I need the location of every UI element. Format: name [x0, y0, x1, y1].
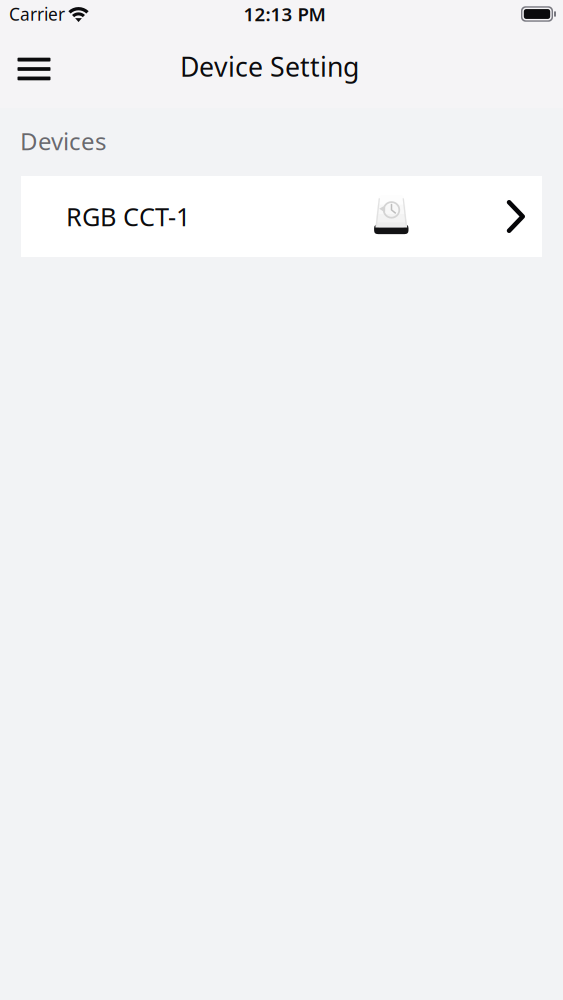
button[interactable]: RGB CCT-1: [21, 176, 542, 257]
staticText: 12:13 PM: [243, 2, 325, 26]
button[interactable]: Menu: [9, 45, 59, 93]
staticText: RGB CCT-1: [66, 200, 190, 233]
staticText: Carrier: [9, 2, 65, 25]
staticText: Device Setting: [180, 49, 359, 84]
staticText: Devices: [20, 125, 106, 157]
